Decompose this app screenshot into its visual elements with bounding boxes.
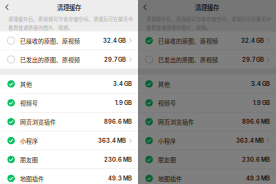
button[interactable]: 已接收的原图、原视频 <box>138 31 276 50</box>
staticText: 3.4 GB <box>251 80 270 87</box>
staticText: 看到普通质量的图片、视频。 <box>8 24 73 31</box>
staticText: 地图插件 <box>20 174 44 183</box>
staticText: 363.4 MB <box>236 137 264 144</box>
button[interactable]: 视频号 <box>0 94 138 112</box>
button[interactable]: 小程序 <box>138 131 276 150</box>
staticText: 896.6 MB <box>104 118 132 125</box>
staticText: 朋友圈 <box>20 155 38 164</box>
staticText: 小程序 <box>20 136 38 145</box>
button[interactable]: 网页浏览插件 <box>0 112 138 131</box>
staticText: 32.4 GB <box>241 37 264 44</box>
staticText: 3.4 GB <box>113 80 132 87</box>
button[interactable]: 朋友圈 <box>138 150 276 169</box>
staticText: 已发出的原图、原视频 <box>158 55 218 64</box>
button[interactable]: 网页浏览插件 <box>138 112 276 131</box>
staticText: 网页浏览插件 <box>158 117 194 126</box>
staticText: 其他 <box>158 80 170 88</box>
staticText: 29.7 GB <box>104 56 126 63</box>
staticText: 网页浏览插件 <box>20 117 56 126</box>
button[interactable]: 已发出的原图、原视频 <box>138 50 276 69</box>
button[interactable]: 地图插件 <box>0 169 138 184</box>
button[interactable]: 已接收的原图、原视频 <box>0 31 138 50</box>
staticText: 地图插件 <box>158 174 182 183</box>
staticText: 清理缓存后，原视频可节省存储空间，清理后可在聊天中 <box>146 15 271 22</box>
button[interactable]: Back <box>0 3 15 12</box>
button[interactable]: 其他 <box>0 75 138 93</box>
staticText: 看到普通质量的图片、视频。 <box>146 24 211 31</box>
staticText: 230.6 MB <box>104 156 132 163</box>
button[interactable]: 其他 <box>138 75 276 93</box>
staticText: 29.7 GB <box>242 56 264 63</box>
staticText: 小程序 <box>158 136 176 145</box>
staticText: 已发出的原图、原视频 <box>20 55 80 64</box>
staticText: 1.9 GB <box>253 99 270 106</box>
staticText: 363.4 MB <box>98 137 126 144</box>
staticText: 清理缓存后，原视频可节省存储空间，清理后可在聊天中 <box>8 15 133 22</box>
staticText: 49.3 MB <box>108 175 132 182</box>
staticText: 视频号 <box>20 99 38 107</box>
staticText: 朋友圈 <box>158 155 176 164</box>
staticText: 896.6 MB <box>242 118 270 125</box>
staticText: 1.9 GB <box>115 99 132 106</box>
button[interactable]: 已发出的原图、原视频 <box>0 50 138 69</box>
button[interactable]: 视频号 <box>138 94 276 112</box>
staticText: 视频号 <box>158 99 176 107</box>
staticText: 清理缓存 <box>57 3 81 12</box>
button[interactable]: Back <box>138 3 153 12</box>
staticText: 已接收的原图、原视频 <box>20 36 80 45</box>
staticText: 32.4 GB <box>103 37 126 44</box>
staticText: 已接收的原图、原视频 <box>158 36 218 45</box>
button[interactable]: 小程序 <box>0 131 138 150</box>
staticText: 230.6 MB <box>242 156 270 163</box>
staticText: 清理缓存 <box>195 3 219 12</box>
button[interactable]: 地图插件 <box>138 169 276 184</box>
staticText: 其他 <box>20 80 32 88</box>
staticText: 49.3 MB <box>246 175 270 182</box>
button[interactable]: 朋友圈 <box>0 150 138 169</box>
